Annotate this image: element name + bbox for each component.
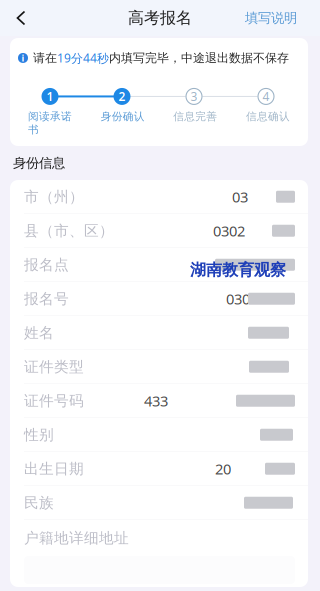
- staticText: 请在: [33, 51, 57, 65]
- button[interactable]: 出生日期: [10, 452, 308, 486]
- staticText: 性别: [24, 426, 54, 444]
- button[interactable]: 性别: [10, 418, 308, 452]
- staticText: 证件号码: [24, 392, 84, 410]
- staticText: 身份信息: [13, 155, 65, 171]
- button[interactable]: 报名点: [10, 248, 308, 282]
- button[interactable]: 报名号: [10, 282, 308, 316]
- button[interactable]: 县（市、区）: [10, 214, 308, 248]
- staticText: 内填写完毕，中途退出数据不保存: [109, 51, 289, 65]
- staticText: 县（市、区）: [24, 222, 114, 240]
- staticText: 身份确认: [101, 110, 145, 123]
- staticText: 信息完善: [173, 110, 217, 123]
- staticText: 信息确认: [246, 110, 290, 123]
- staticText: 2: [118, 88, 125, 104]
- button[interactable]: 证件类型: [10, 350, 308, 384]
- staticText: 0302: [213, 221, 245, 240]
- button[interactable]: 返回: [0, 0, 42, 36]
- staticText: 1: [46, 88, 53, 104]
- staticText: 阅读承诺书: [28, 110, 72, 136]
- button[interactable]: 民族: [10, 486, 308, 520]
- staticText: 高考报名: [128, 8, 192, 28]
- button[interactable]: 市（州）: [10, 180, 308, 214]
- button[interactable]: 填写说明: [233, 0, 320, 36]
- staticText: i: [21, 52, 24, 64]
- staticText: 市（州）: [24, 188, 84, 206]
- staticText: 户籍地详细地址: [24, 529, 129, 547]
- staticText: 出生日期: [24, 460, 84, 478]
- staticText: 报名号: [24, 290, 69, 308]
- staticText: 湖南教育观察: [190, 260, 286, 280]
- staticText: 填写说明: [245, 10, 297, 26]
- staticText: 姓名: [24, 324, 54, 342]
- staticText: 民族: [24, 494, 54, 512]
- staticText: 4: [262, 88, 269, 104]
- staticText: 03: [232, 187, 248, 206]
- staticText: 20: [215, 459, 231, 478]
- button[interactable]: 证件号码: [10, 384, 308, 418]
- staticText: 3: [190, 88, 197, 104]
- staticText: 030: [226, 289, 250, 308]
- staticText: 报名点: [24, 256, 69, 274]
- staticText: 19分44秒: [57, 50, 109, 66]
- staticText: 433: [144, 391, 168, 410]
- button[interactable]: 姓名: [10, 316, 308, 350]
- staticText: 证件类型: [24, 358, 84, 376]
